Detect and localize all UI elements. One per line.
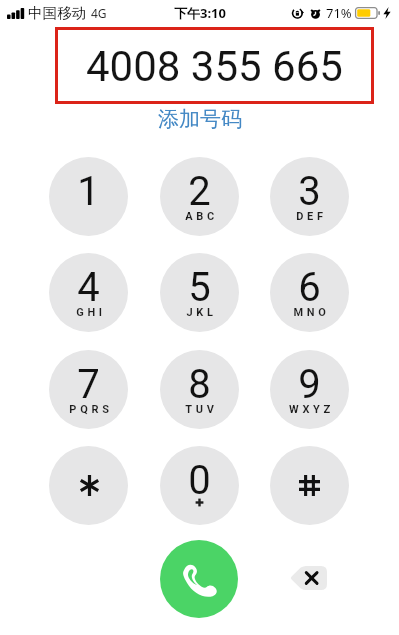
staticText: PQRS xyxy=(69,403,113,416)
staticText: 3 xyxy=(298,168,321,215)
button[interactable]: 9 xyxy=(270,350,349,429)
staticText: 0 xyxy=(188,457,211,504)
staticText: 6 xyxy=(298,264,321,311)
button[interactable]: Backspace xyxy=(286,562,330,594)
staticText: GHI xyxy=(76,306,106,319)
button[interactable]: 添加号码 xyxy=(148,103,252,135)
staticText: 中国移动 xyxy=(28,4,87,22)
staticText: 添加号码 xyxy=(158,106,242,132)
staticText: 2 xyxy=(188,168,211,215)
staticText: 4008 355 665 xyxy=(86,42,343,91)
staticText: MNO xyxy=(293,306,330,319)
staticText: DEF xyxy=(296,210,327,223)
staticText: 71% xyxy=(326,4,352,22)
staticText: TUV xyxy=(185,403,218,416)
button[interactable]: 6 xyxy=(270,253,349,332)
staticText: JKL xyxy=(186,306,217,319)
button[interactable]: Hash xyxy=(270,446,349,525)
staticText: 4 xyxy=(77,264,100,311)
button[interactable]: Star xyxy=(49,446,128,525)
button[interactable]: 8 xyxy=(160,350,239,429)
staticText: WXYZ xyxy=(289,403,334,416)
button[interactable]: Call xyxy=(160,540,238,618)
staticText: 1 xyxy=(77,168,100,215)
staticText: ABC xyxy=(185,210,218,223)
staticText: 4G xyxy=(91,5,107,21)
button[interactable]: 1 xyxy=(49,157,128,236)
staticText: 7 xyxy=(77,361,100,408)
staticText: 5 xyxy=(188,264,211,311)
staticText: 8 xyxy=(188,361,211,408)
button[interactable]: 3 xyxy=(270,157,349,236)
button[interactable]: 4 xyxy=(49,253,128,332)
staticText: 下午3:10 xyxy=(174,4,226,22)
button[interactable]: 0 xyxy=(160,446,239,525)
staticText: 9 xyxy=(298,361,321,408)
button[interactable]: 2 xyxy=(160,157,239,236)
button[interactable]: 5 xyxy=(160,253,239,332)
button[interactable]: 7 xyxy=(49,350,128,429)
